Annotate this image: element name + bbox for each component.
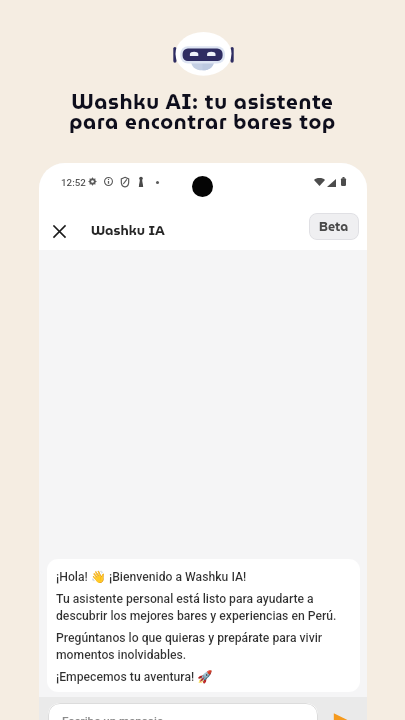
staticText: Washku AI: tu asistente para encontrar b… — [69, 85, 336, 138]
staticText: ¡Empecemos tu aventura! 🚀 — [56, 670, 213, 684]
button[interactable]: Enviar — [332, 711, 350, 720]
staticText: 12:52 — [61, 177, 86, 188]
button[interactable]: Beta — [309, 213, 359, 240]
button[interactable]: Cerrar — [46, 218, 72, 244]
staticText: Escribe un mensaje... — [62, 714, 173, 720]
button[interactable]: Escribe un mensaje... — [48, 703, 318, 720]
staticText: Washku IA — [91, 220, 165, 241]
staticText: Pregúntanos lo que quieras y prepárate p… — [56, 631, 350, 662]
staticText: Tu asistente personal está listo para ay… — [56, 592, 350, 623]
staticText: Beta — [319, 217, 349, 237]
staticText: ¡Hola! 👋 ¡Bienvenido a Washku IA! — [56, 570, 247, 584]
